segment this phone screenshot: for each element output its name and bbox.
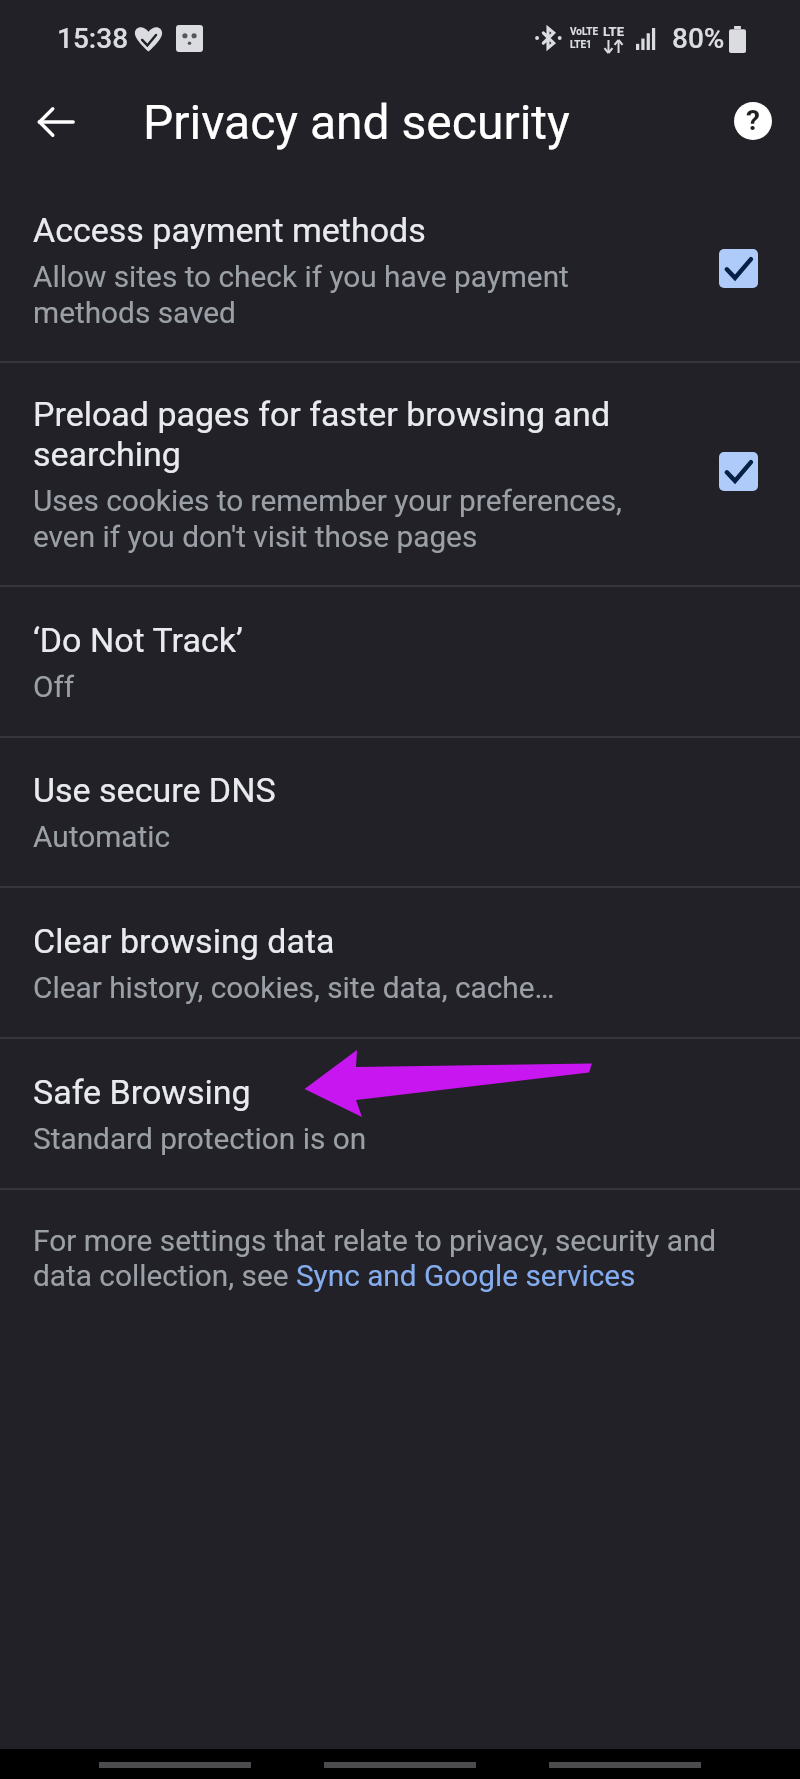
staticText: ‘Do Not Track’: [33, 620, 243, 660]
staticText: Automatic: [33, 819, 171, 854]
staticText: 80%: [672, 22, 725, 55]
button[interactable]: Use secure DNS: [0, 738, 800, 886]
button[interactable]: Safe Browsing: [0, 1039, 800, 1188]
staticText: Preload pages for faster browsing and se…: [33, 394, 685, 474]
staticText: Use secure DNS: [33, 770, 276, 810]
button[interactable]: Toggle Access payment methods: [707, 237, 769, 299]
staticText: Standard protection is on: [33, 1121, 367, 1156]
staticText: Clear history, cookies, site data, cache…: [33, 970, 555, 1005]
button[interactable]: Clear browsing data: [0, 888, 800, 1037]
staticText: Privacy and security: [143, 94, 570, 150]
staticText: For more settings that relate to privacy…: [33, 1223, 745, 1293]
staticText: VoLTE: [570, 26, 599, 38]
staticText: Safe Browsing: [33, 1072, 251, 1112]
button[interactable]: Access payment methods: [0, 180, 800, 361]
staticText: Clear browsing data: [33, 921, 335, 961]
button[interactable]: Back: [25, 91, 87, 153]
staticText: Off: [33, 669, 75, 704]
staticText: 15:38: [57, 22, 129, 55]
button[interactable]: Preload pages for faster browsing and se…: [0, 363, 800, 585]
button[interactable]: Help: [722, 90, 784, 152]
button[interactable]: ‘Do Not Track’: [0, 587, 800, 736]
staticText: Access payment methods: [33, 210, 426, 250]
staticText: LTE: [603, 24, 624, 39]
button[interactable]: Toggle Preload pages for faster browsing…: [707, 440, 769, 502]
staticText: ?: [746, 104, 760, 137]
staticText: Uses cookies to remember your preference…: [33, 483, 685, 555]
staticText: LTE1: [570, 39, 592, 51]
staticText: Allow sites to check if you have payment…: [33, 259, 685, 331]
